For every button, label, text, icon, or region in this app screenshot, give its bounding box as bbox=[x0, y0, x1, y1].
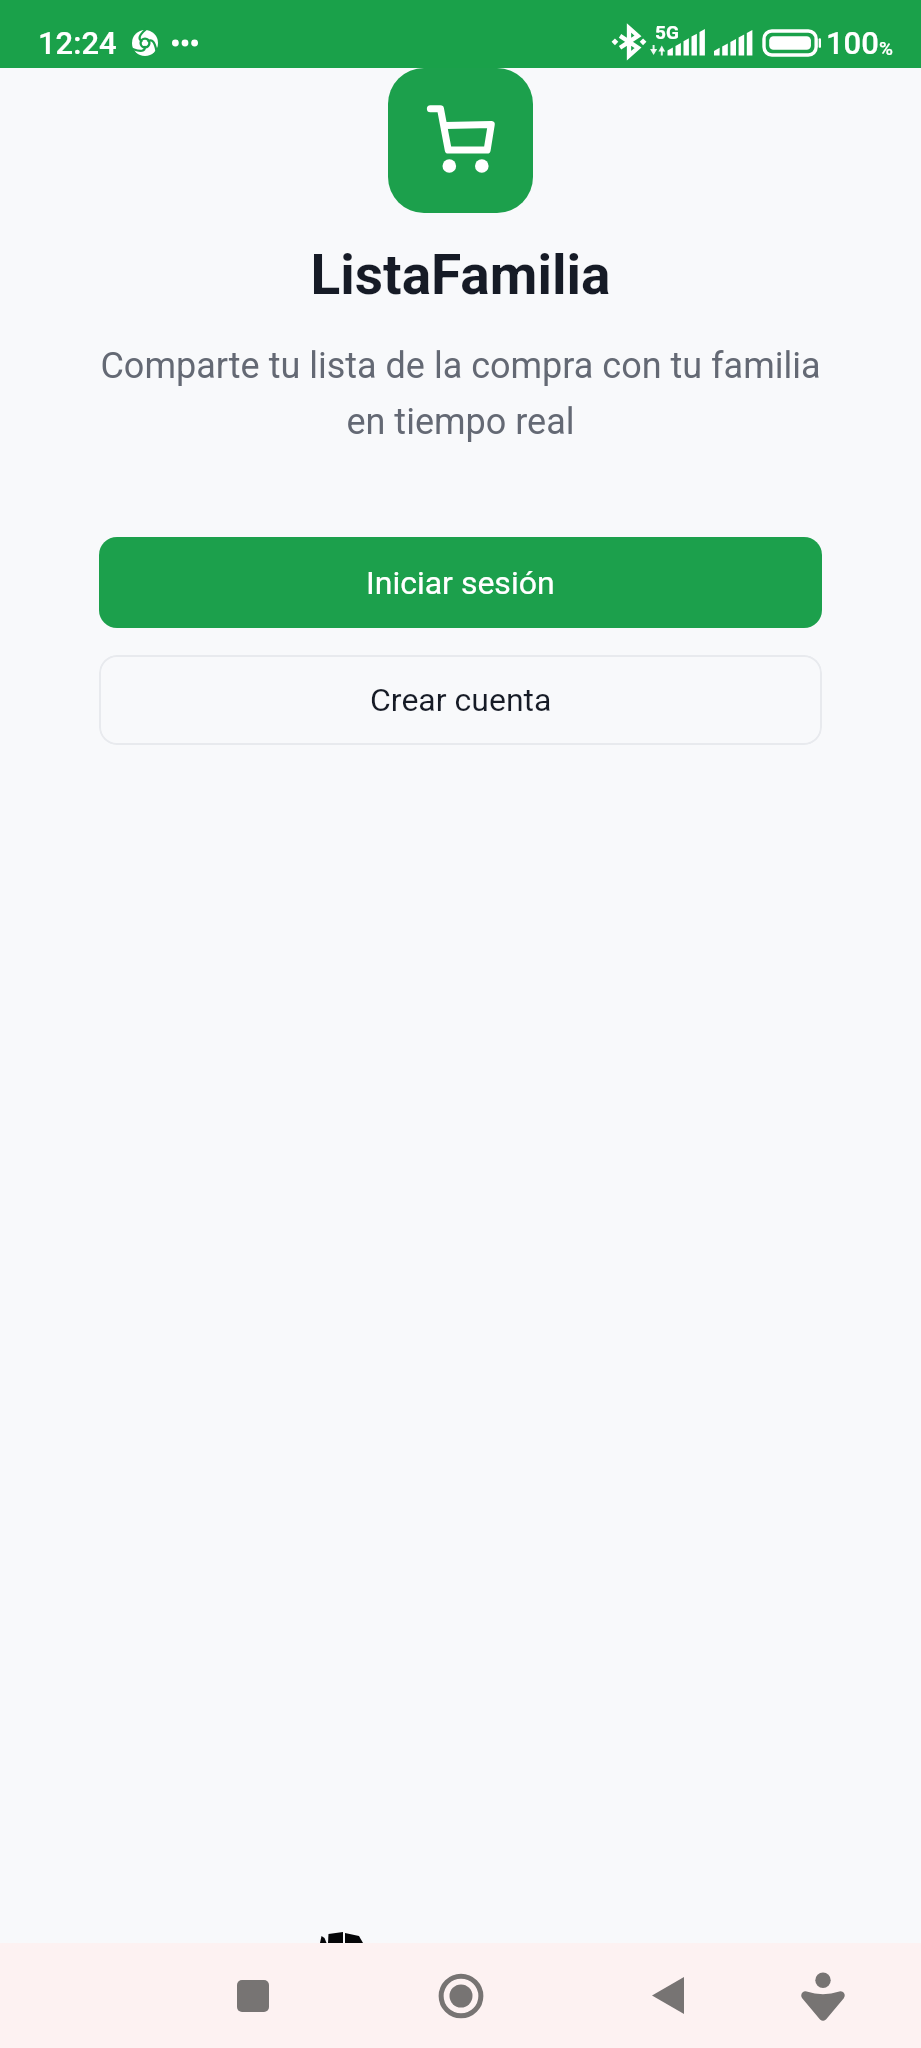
staticText: ListaFamilia bbox=[310, 243, 611, 307]
button[interactable]: Accessibility bbox=[769, 1943, 876, 2048]
staticText: 12:24 bbox=[38, 25, 117, 61]
staticText: 100 bbox=[826, 25, 879, 61]
button[interactable]: Recents bbox=[199, 1943, 306, 2048]
button[interactable]: Back bbox=[614, 1943, 721, 2048]
staticText: % bbox=[879, 37, 893, 59]
staticText: Crear cuenta bbox=[370, 681, 552, 719]
staticText: 5G bbox=[655, 21, 679, 43]
button[interactable]: Crear cuenta bbox=[99, 655, 822, 745]
button[interactable]: Home bbox=[407, 1943, 514, 2048]
staticText: Iniciar sesión bbox=[366, 564, 555, 602]
staticText: Comparte tu lista de la compra con tu fa… bbox=[88, 345, 833, 442]
button[interactable]: Iniciar sesión bbox=[99, 537, 822, 628]
